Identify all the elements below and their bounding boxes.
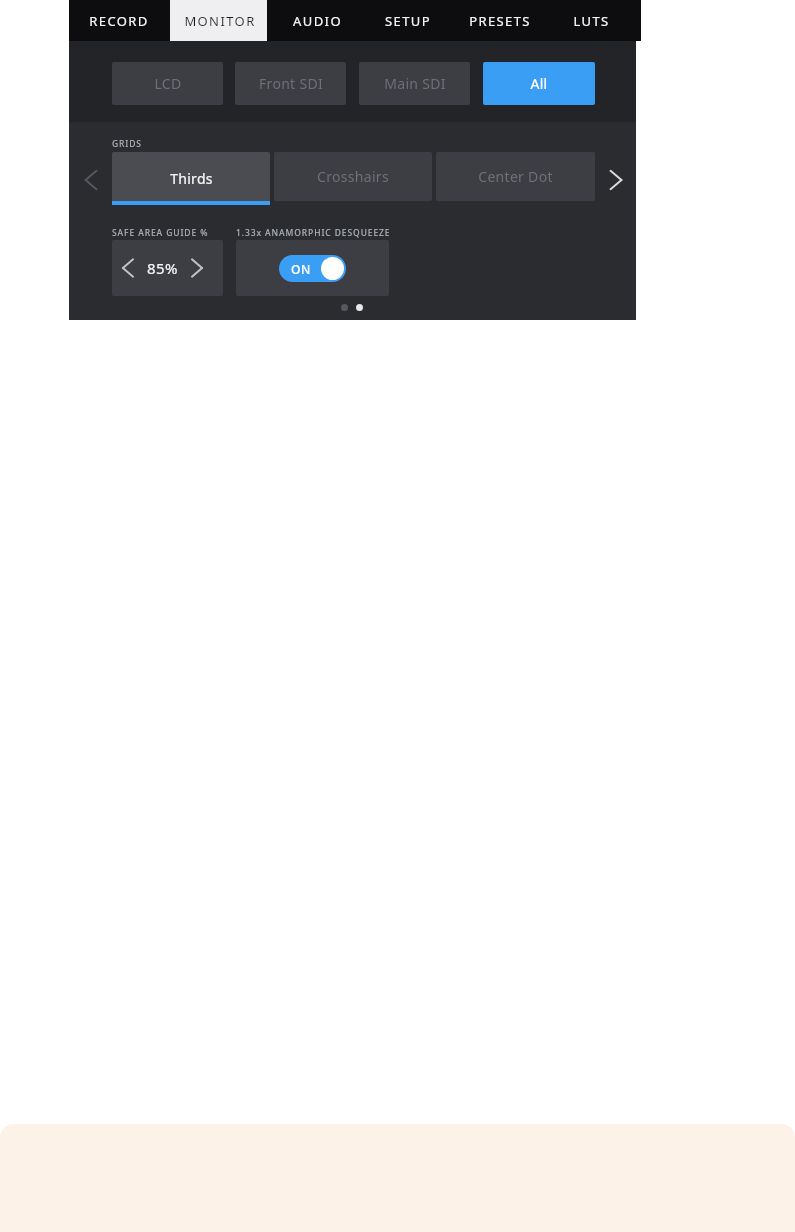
button[interactable]: Anamorphic desqueeze on (279, 255, 346, 282)
button[interactable]: PRESETS (450, 0, 550, 41)
staticText: 85% (147, 258, 178, 278)
staticText: MONITOR (184, 12, 256, 30)
staticText: Center Dot (478, 167, 553, 186)
staticText: LUTS (573, 12, 610, 30)
staticText: LCD (154, 74, 182, 93)
button[interactable]: Main SDI (359, 62, 470, 105)
button[interactable]: Previous page (78, 163, 104, 197)
button[interactable]: Decrease safe area (112, 240, 223, 296)
staticText: 1.33x ANAMORPHIC DESQUEEZE (236, 227, 391, 239)
staticText: SETUP (385, 12, 431, 30)
staticText: SAFE AREA GUIDE % (112, 227, 209, 239)
button[interactable]: LUTS (541, 0, 641, 41)
staticText: ON (291, 261, 311, 277)
staticText: RECORD (89, 12, 149, 30)
staticText: Main SDI (384, 74, 446, 93)
button[interactable]: Thirds (112, 152, 270, 205)
button[interactable]: Front SDI (235, 62, 346, 105)
button[interactable]: Increase safe area (185, 252, 209, 284)
button[interactable]: Decrease safe area (116, 252, 140, 284)
button[interactable]: Next page (603, 163, 629, 197)
button[interactable]: SETUP (358, 0, 458, 41)
staticText: All (530, 74, 548, 93)
staticText: GRIDS (112, 138, 142, 150)
button[interactable]: LCD (112, 62, 223, 105)
staticText: Thirds (170, 169, 213, 188)
button[interactable]: MONITOR (170, 0, 270, 41)
staticText: Crosshairs (317, 167, 389, 186)
button[interactable]: AUDIO (267, 0, 367, 41)
button[interactable]: Center Dot (436, 152, 595, 201)
staticText: AUDIO (293, 12, 342, 30)
staticText: PRESETS (469, 12, 531, 30)
button[interactable]: RECORD (69, 0, 169, 41)
button[interactable]: All (483, 62, 595, 105)
staticText: Front SDI (259, 74, 323, 93)
button[interactable]: Crosshairs (274, 152, 432, 201)
